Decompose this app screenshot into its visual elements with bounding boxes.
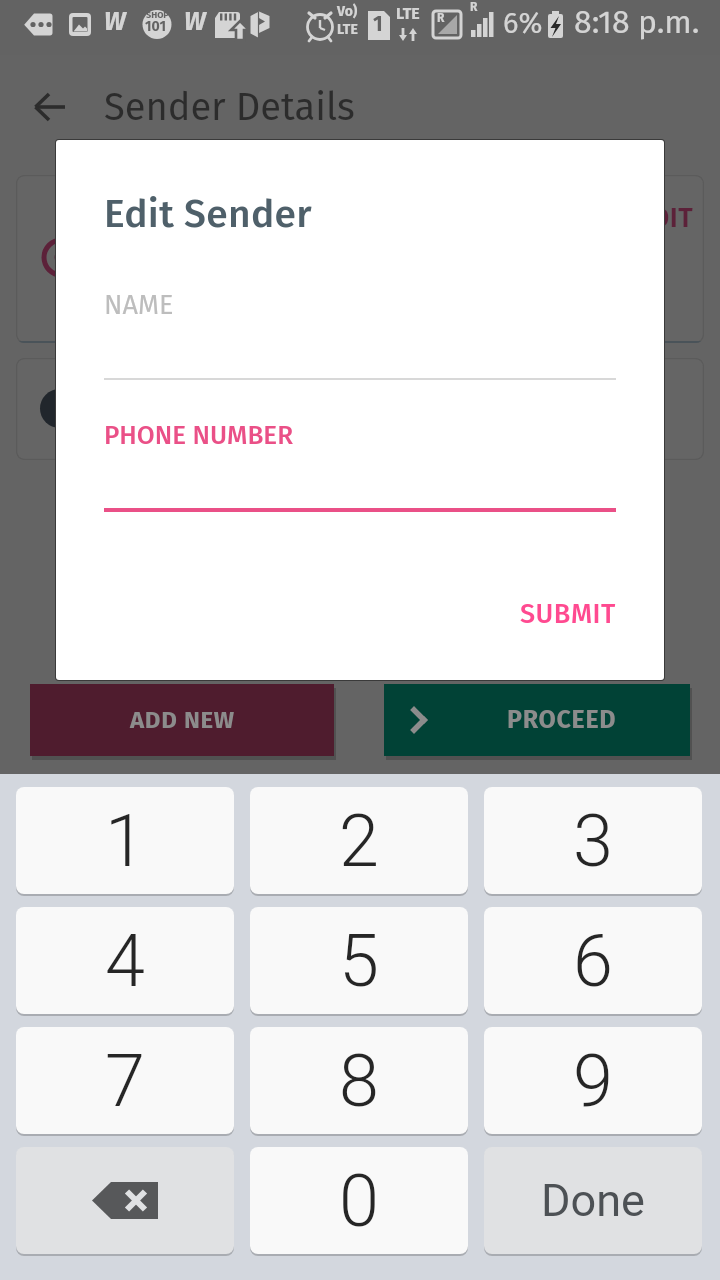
staticText: SUBMIT (520, 598, 616, 630)
staticText: 3 (573, 799, 613, 883)
staticText: 7 (105, 1039, 145, 1123)
button[interactable]: Done (484, 1147, 702, 1254)
staticText: PROCEED (507, 705, 617, 735)
button[interactable]: 4 (16, 907, 234, 1014)
button[interactable]: 2 (250, 787, 468, 894)
staticText: ADD NEW (130, 706, 235, 735)
staticText: 1 (105, 799, 145, 883)
button[interactable]: 8 (250, 1027, 468, 1134)
staticText: Vo) (337, 3, 358, 20)
button[interactable]: Back (22, 83, 76, 137)
staticText: SHOP (146, 10, 169, 21)
button[interactable]: 3 (484, 787, 702, 894)
staticText: Sender Details (104, 84, 355, 130)
staticText: R (470, 0, 478, 14)
button[interactable]: 7 (16, 1027, 234, 1134)
staticText: Edit Sender (104, 191, 312, 238)
staticText: 2 (339, 799, 379, 883)
button[interactable]: SUBMIT (508, 586, 628, 642)
button[interactable]: 0 (250, 1147, 468, 1254)
other: Backspace (16, 1147, 234, 1254)
button[interactable] (16, 358, 704, 460)
button[interactable]: 5 (250, 907, 468, 1014)
button[interactable]: 9 (484, 1027, 702, 1134)
staticText: 8:18 p.m. (574, 3, 700, 41)
staticText: 5 (339, 919, 379, 1003)
staticText: EDIT (637, 202, 694, 234)
staticText: 1 (373, 11, 383, 36)
staticText: LTE (337, 21, 358, 38)
staticText: Done (541, 1174, 645, 1227)
button[interactable]: PROCEED (384, 684, 690, 756)
button[interactable]: ADD NEW (30, 684, 334, 756)
staticText: 9 (573, 1039, 613, 1123)
staticText: 4 (105, 919, 145, 1003)
staticText: 8 (339, 1039, 379, 1123)
staticText: W (184, 6, 206, 37)
staticText: W (104, 6, 126, 37)
button[interactable]: EDIT (16, 175, 704, 343)
button[interactable]: 1 (16, 787, 234, 894)
staticText: 101 (145, 18, 166, 35)
staticText: 6 (573, 919, 613, 1003)
staticText: PHONE NUMBER (104, 420, 294, 451)
button[interactable]: 6 (484, 907, 702, 1014)
staticText: R (437, 11, 445, 25)
staticText: 6% (503, 6, 543, 41)
button[interactable]: Backspace (16, 1147, 234, 1254)
staticText: NAME (104, 289, 174, 321)
staticText: LTE (396, 4, 420, 23)
staticText: 0 (339, 1159, 379, 1243)
